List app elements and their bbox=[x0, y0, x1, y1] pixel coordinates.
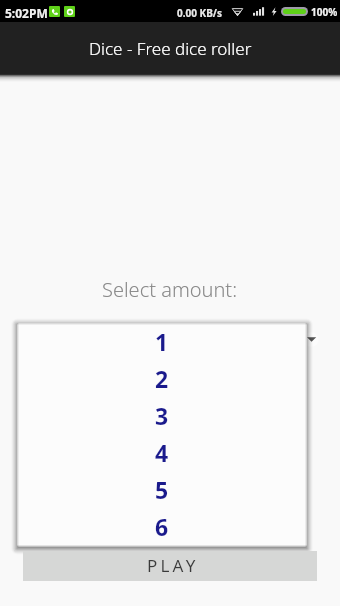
button[interactable]: PLAY bbox=[23, 551, 317, 581]
staticText: 5:02PM bbox=[5, 5, 48, 21]
staticText: 3 bbox=[155, 400, 169, 431]
button[interactable]: 2 bbox=[17, 360, 307, 397]
staticText: 2 bbox=[155, 363, 169, 394]
button[interactable]: 5 bbox=[17, 471, 307, 508]
staticText: 0.00 KB/s bbox=[177, 6, 223, 20]
button[interactable]: 6 bbox=[17, 508, 307, 545]
button[interactable]: Open amount dropdown bbox=[302, 330, 320, 348]
button[interactable]: 4 bbox=[17, 434, 307, 471]
button[interactable]: 1 bbox=[17, 323, 307, 360]
staticText: 6 bbox=[155, 511, 169, 542]
staticText: 100% bbox=[311, 5, 338, 19]
staticText: Select amount: bbox=[102, 276, 238, 303]
staticText: Dice - Free dice roller bbox=[89, 37, 252, 60]
staticText: PLAY bbox=[147, 554, 199, 577]
button[interactable]: 3 bbox=[17, 397, 307, 434]
staticText: 4 bbox=[155, 437, 169, 468]
staticText: 5 bbox=[155, 474, 169, 505]
staticText: 1 bbox=[155, 326, 169, 357]
